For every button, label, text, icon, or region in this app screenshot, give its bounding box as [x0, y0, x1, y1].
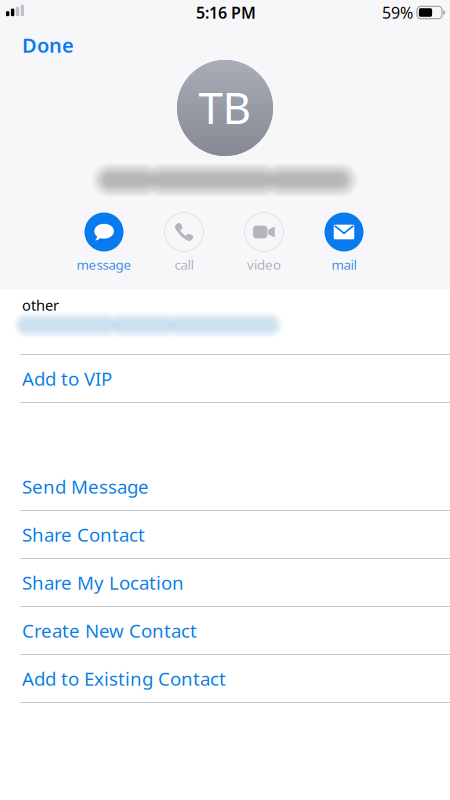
staticText: Add to VIP: [22, 366, 112, 391]
staticText: message: [76, 256, 131, 273]
staticText: mail: [331, 256, 356, 273]
button[interactable]: other: [0, 289, 450, 355]
staticText: Add to Existing Contact: [22, 666, 226, 691]
button[interactable]: Done: [22, 30, 82, 60]
staticText: 59%: [382, 2, 413, 23]
staticText: video: [247, 256, 281, 273]
button[interactable]: Add to VIP: [0, 355, 450, 403]
button[interactable]: Add to Existing Contact: [0, 655, 450, 703]
staticText: Done: [22, 32, 74, 58]
staticText: TB: [198, 78, 251, 136]
button[interactable]: Share Contact: [0, 511, 450, 559]
button[interactable]: video: [224, 212, 304, 271]
staticText: Share Contact: [22, 522, 145, 547]
staticText: other: [22, 295, 59, 315]
button[interactable]: Share My Location: [0, 559, 450, 607]
staticText: Create New Contact: [22, 618, 197, 643]
staticText: 5:16 PM: [196, 2, 256, 23]
button[interactable]: mail: [304, 212, 384, 271]
button[interactable]: Send Message: [0, 463, 450, 511]
staticText: Share My Location: [22, 570, 184, 595]
button[interactable]: call: [144, 212, 224, 271]
button[interactable]: message: [64, 212, 144, 271]
staticText: Send Message: [22, 474, 149, 499]
staticText: call: [174, 256, 193, 273]
button[interactable]: Create New Contact: [0, 607, 450, 655]
